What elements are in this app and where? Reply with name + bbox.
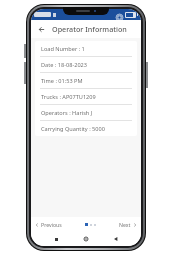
button[interactable]: Next [115, 219, 141, 230]
staticText: Operators : Harish J [41, 109, 93, 117]
button[interactable]: Load Number : 1 [35, 41, 137, 56]
staticText: Carrying Quantity : 5000 [41, 125, 105, 133]
button[interactable]: Date : 18-08-2023 [35, 57, 137, 72]
button[interactable]: Back [34, 22, 48, 36]
button[interactable]: Back [111, 234, 121, 244]
button[interactable]: Trucks : AP07TU1209 [35, 89, 137, 104]
button[interactable]: Previous [31, 219, 66, 230]
button[interactable]: Home [81, 234, 91, 244]
staticText: Date : 18-08-2023 [41, 61, 88, 69]
staticText: Next [119, 221, 131, 228]
staticText: Time : 01:53 PM [41, 77, 83, 85]
button[interactable]: Recents [51, 234, 61, 244]
button[interactable]: Time : 01:53 PM [35, 73, 137, 88]
staticText: Load Number : 1 [41, 45, 85, 53]
button[interactable]: Operators : Harish J [35, 105, 137, 120]
staticText: Operator Information [52, 24, 127, 34]
staticText: Previous [41, 221, 62, 228]
button[interactable]: Carrying Quantity : 5000 [35, 121, 137, 136]
staticText: Trucks : AP07TU1209 [41, 93, 96, 101]
